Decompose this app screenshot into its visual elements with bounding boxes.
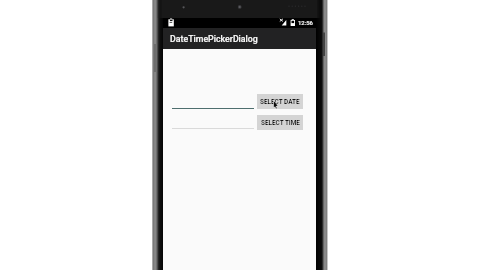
button[interactable]: SELECT DATE (257, 94, 303, 109)
staticText: DateTimePickerDialog (170, 34, 258, 44)
button[interactable]: SELECT TIME (257, 115, 303, 130)
button[interactable]: DateTimePickerDialog (163, 28, 316, 49)
staticText: SELECT DATE (260, 98, 300, 106)
staticText: SELECT TIME (261, 119, 300, 127)
staticText: 12:56 (298, 20, 313, 27)
